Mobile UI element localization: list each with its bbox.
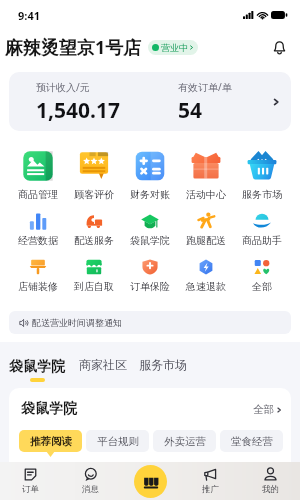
staticText: 到店自取 (74, 280, 114, 293)
staticText: 全部 (253, 403, 274, 416)
button[interactable]: Notifications (268, 36, 290, 58)
button[interactable]: 平台规则 (86, 430, 149, 452)
staticText: 袋鼠学院 (9, 358, 65, 376)
button[interactable]: 配送服务 (66, 194, 122, 240)
button[interactable]: 袋鼠学院 (122, 194, 178, 240)
button[interactable]: 我的 (240, 467, 300, 495)
button[interactable]: 活动中心 (178, 148, 234, 194)
staticText: 有效订单/单 (178, 80, 232, 94)
button[interactable]: 急速退款 (178, 240, 234, 286)
staticText: 9:41 (18, 8, 40, 23)
button[interactable]: 商品助手 (234, 194, 290, 240)
staticText: 跑腿配送 (186, 234, 226, 247)
button[interactable]: 全部 (234, 240, 290, 286)
button[interactable]: 到店自取 (66, 240, 122, 286)
button[interactable]: 堂食经营 (220, 430, 283, 452)
staticText: 袋鼠学院 (130, 234, 170, 247)
button[interactable]: 商家社区 (79, 357, 127, 372)
staticText: 平台规则 (97, 435, 139, 448)
staticText: 推荐阅读 (30, 435, 72, 448)
staticText: 麻辣烫望京1号店 (5, 35, 142, 60)
button[interactable]: 预计收入/元 (9, 72, 291, 131)
button[interactable]: 经营数据 (10, 194, 66, 240)
staticText: 预计收入/元 (36, 80, 90, 94)
staticText: 服务市场 (242, 188, 282, 201)
staticText: 堂食经营 (231, 435, 273, 448)
staticText: 54 (178, 96, 203, 125)
staticText: 订单保险 (130, 280, 170, 293)
button[interactable]: 跑腿配送 (178, 194, 234, 240)
button[interactable]: 顾客评价 (66, 148, 122, 194)
button[interactable]: 服务市场 (234, 148, 290, 194)
button[interactable]: 店铺装修 (10, 240, 66, 286)
button[interactable]: 订单保险 (122, 240, 178, 286)
button[interactable]: 服务市场 (139, 357, 187, 372)
button[interactable]: 袋鼠学院 (9, 352, 65, 376)
staticText: 推广 (202, 484, 219, 495)
staticText: 急速退款 (186, 280, 226, 293)
button[interactable]: 订单 (0, 467, 60, 495)
staticText: 财务对账 (130, 188, 170, 201)
staticText: 店铺装修 (18, 280, 58, 293)
button[interactable]: 推广 (180, 467, 240, 495)
staticText: 订单 (22, 484, 39, 495)
button[interactable]: 配送营业时间调整通知 (9, 311, 291, 334)
staticText: 外卖运营 (164, 435, 206, 448)
staticText: 全部 (252, 280, 272, 293)
button[interactable]: 全部 (253, 403, 291, 416)
button[interactable]: 消息 (60, 467, 120, 495)
staticText: 活动中心 (186, 188, 226, 201)
staticText: 配送服务 (74, 234, 114, 247)
button[interactable]: Store (134, 465, 167, 498)
staticText: 商品管理 (18, 188, 58, 201)
button[interactable]: 推荐阅读 (19, 430, 82, 452)
button[interactable]: 财务对账 (122, 148, 178, 194)
staticText: 1,540.17 (36, 96, 120, 125)
staticText: 顾客评价 (74, 188, 114, 201)
button[interactable]: 外卖运营 (153, 430, 216, 452)
staticText: 我的 (262, 484, 279, 495)
button[interactable]: 商品管理 (10, 148, 66, 194)
staticText: 经营数据 (18, 234, 58, 247)
button[interactable]: 营业中 (148, 40, 198, 55)
staticText: 袋鼠学院 (21, 400, 77, 418)
staticText: 消息 (82, 484, 99, 495)
staticText: 营业中 (161, 42, 188, 53)
staticText: 配送营业时间调整通知 (32, 317, 122, 328)
staticText: 商品助手 (242, 234, 282, 247)
